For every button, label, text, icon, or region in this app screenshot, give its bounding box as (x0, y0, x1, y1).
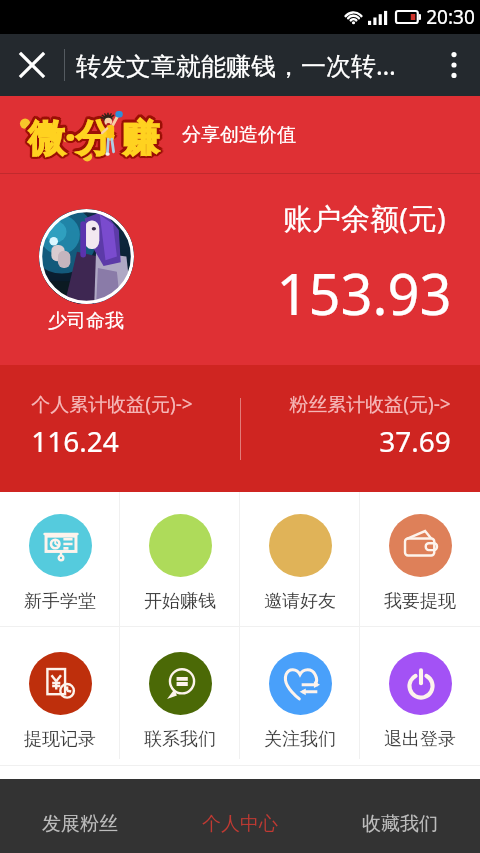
staticText: 提现记录 (24, 728, 96, 751)
staticText: 收藏我们 (362, 812, 438, 836)
button[interactable]: 联系我们 (120, 627, 240, 759)
staticText: 退出登录 (384, 728, 456, 751)
staticText: 关注我们 (264, 728, 336, 751)
button[interactable] (14, 105, 162, 165)
staticText: 我要提现 (384, 590, 456, 613)
staticText: 116.24 (31, 422, 119, 460)
staticText: 分享创造价值 (182, 123, 296, 147)
button[interactable]: 提现记录 (0, 627, 120, 759)
staticText: 少司命我 (48, 309, 124, 333)
staticText: 粉丝累计收益(元)-> (289, 391, 451, 417)
staticText: 开始赚钱 (144, 590, 216, 613)
button[interactable]: Profile avatar (39, 209, 134, 304)
button[interactable]: More options (428, 34, 480, 96)
button[interactable]: 邀请好友 (240, 492, 360, 626)
button[interactable]: 个人中心 (160, 779, 320, 853)
staticText: 20:30 (426, 4, 475, 30)
button[interactable]: 开始赚钱 (120, 492, 240, 626)
staticText: 转发文章就能赚钱，一次转… (76, 48, 396, 82)
staticText: 邀请好友 (264, 590, 336, 613)
button[interactable]: 新手学堂 (0, 492, 120, 626)
staticText: 账户余额(元) (283, 198, 446, 238)
staticText: 个人中心 (202, 812, 278, 836)
staticText: 联系我们 (144, 728, 216, 751)
button[interactable]: 收藏我们 (320, 779, 480, 853)
staticText: 37.69 (379, 422, 451, 460)
staticText: 个人累计收益(元)-> (31, 391, 193, 417)
button[interactable]: 我要提现 (360, 492, 480, 626)
button[interactable]: 退出登录 (360, 627, 480, 759)
button[interactable]: 关注我们 (240, 627, 360, 759)
staticText: 153.93 (276, 255, 452, 331)
staticText: 新手学堂 (24, 590, 96, 613)
staticText: 发展粉丝 (42, 812, 118, 836)
button[interactable]: Close (0, 34, 64, 96)
button[interactable]: 发展粉丝 (0, 779, 160, 853)
